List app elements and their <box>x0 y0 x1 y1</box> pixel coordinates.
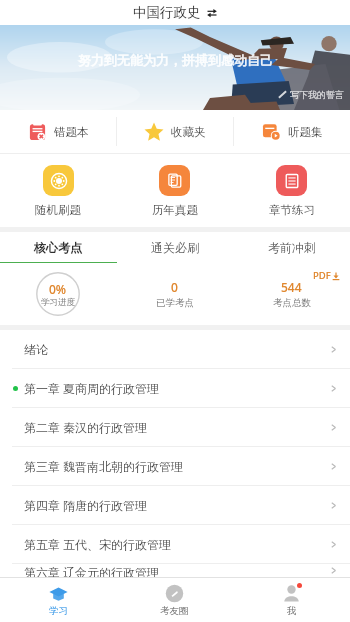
staticText: 错题本 <box>54 125 89 139</box>
button[interactable]: 学习 <box>0 578 116 622</box>
staticText: 我 <box>287 605 297 617</box>
staticText: 随机刷题 <box>35 203 81 217</box>
staticText: 核心考点 <box>34 240 82 255</box>
staticText: 第三章 魏晋南北朝的行政管理 <box>24 458 184 474</box>
button[interactable]: 第一章 夏商周的行政管理 <box>0 369 350 407</box>
button[interactable]: 通关必刷 <box>116 232 233 262</box>
staticText: PDF <box>313 269 331 282</box>
staticText: 绪论 <box>24 342 48 357</box>
staticText: 历年真题 <box>152 203 198 217</box>
staticText: 听题集 <box>288 125 323 139</box>
staticText: 努力到无能为力，拼搏到感动自己 <box>78 52 273 68</box>
button[interactable]: 核心考点 <box>0 232 116 262</box>
staticText: 学习 <box>49 605 68 617</box>
staticText: 写下我的誓言 <box>290 89 344 100</box>
button[interactable]: 错题本 <box>0 110 116 153</box>
staticText: 通关必刷 <box>151 240 199 255</box>
button[interactable]: 我 <box>233 578 350 622</box>
button[interactable]: 写下我的誓言 <box>278 89 344 100</box>
button[interactable]: 听题集 <box>234 110 350 153</box>
button[interactable]: 努力到无能为力，拼搏到感动自己 <box>0 25 350 110</box>
button[interactable]: 历年真题 <box>116 154 233 227</box>
staticText: 中国行政史 <box>133 4 201 21</box>
staticText: 学习进度 <box>41 297 75 308</box>
button[interactable]: 第三章 魏晋南北朝的行政管理 <box>0 447 350 485</box>
button[interactable]: 第四章 隋唐的行政管理 <box>0 486 350 524</box>
staticText: 考点总数 <box>273 297 311 309</box>
staticText: 第六章 辽金元的行政管理 <box>24 564 160 577</box>
button[interactable]: 绪论 <box>0 330 350 368</box>
staticText: 收藏夹 <box>171 125 206 139</box>
staticText: 第二章 秦汉的行政管理 <box>24 419 148 435</box>
staticText: 已学考点 <box>156 297 194 309</box>
staticText: 第五章 五代、宋的行政管理 <box>24 536 172 552</box>
staticText: 考友圈 <box>160 605 189 617</box>
staticText: 544 <box>281 279 302 295</box>
button[interactable]: 第六章 辽金元的行政管理 <box>0 564 350 577</box>
button[interactable]: 考友圈 <box>116 578 233 622</box>
button[interactable]: 第二章 秦汉的行政管理 <box>0 408 350 446</box>
staticText: 0% <box>49 281 67 297</box>
staticText: 第四章 隋唐的行政管理 <box>24 497 148 513</box>
staticText: 第一章 夏商周的行政管理 <box>24 380 160 396</box>
button[interactable]: 章节练习 <box>233 154 350 227</box>
button[interactable]: Switch course <box>205 6 218 19</box>
button[interactable]: 考前冲刺 <box>233 232 350 262</box>
button[interactable]: 收藏夹 <box>117 110 233 153</box>
staticText: 章节练习 <box>269 203 315 217</box>
staticText: 考前冲刺 <box>268 240 316 255</box>
staticText: 0 <box>171 279 178 295</box>
button[interactable]: 随机刷题 <box>0 154 116 227</box>
button[interactable]: PDF <box>313 269 340 282</box>
button[interactable]: 第五章 五代、宋的行政管理 <box>0 525 350 563</box>
